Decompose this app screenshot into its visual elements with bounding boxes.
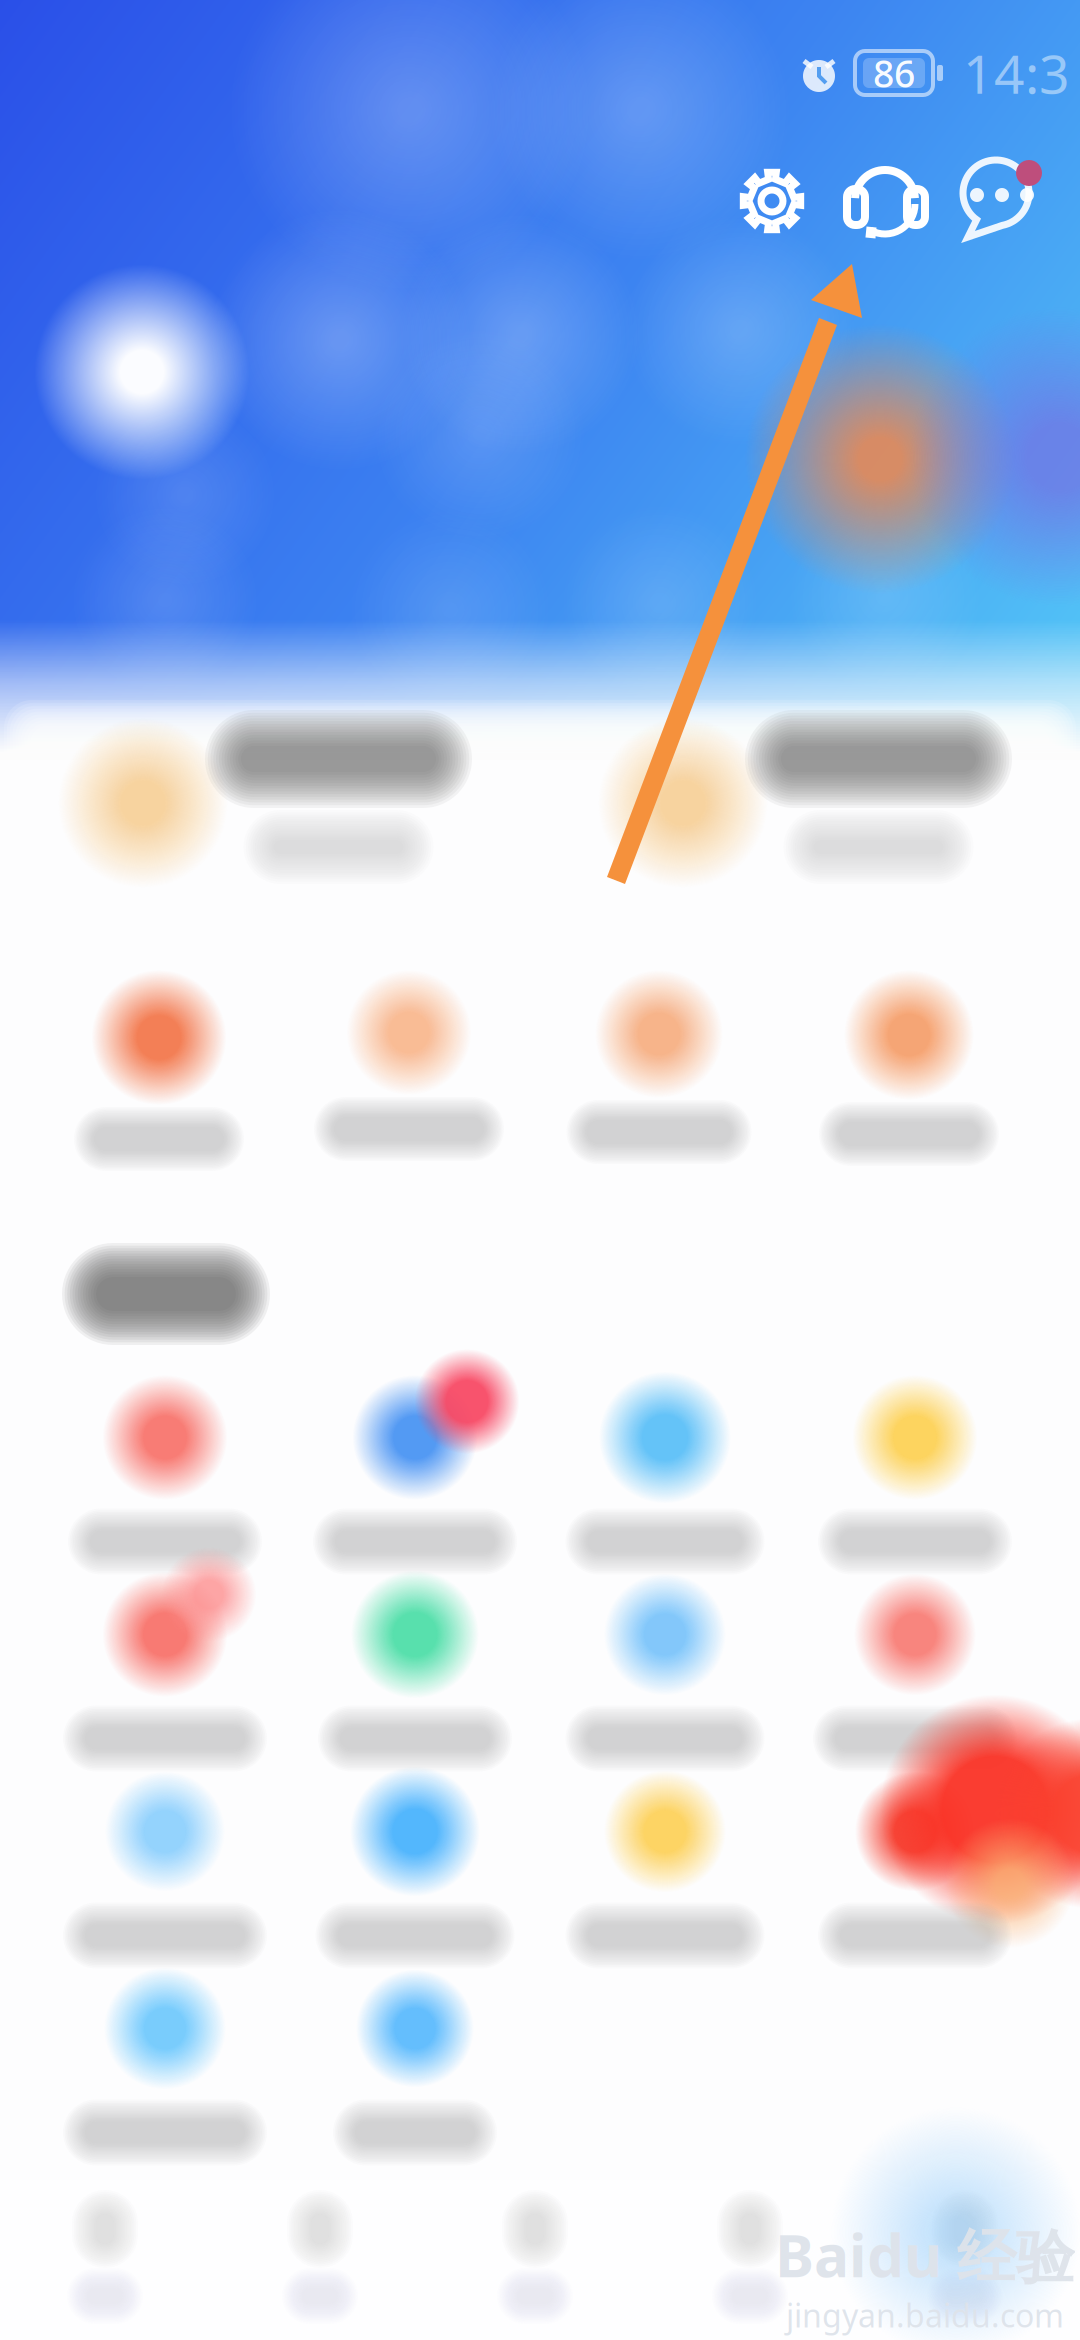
button[interactable]	[290, 1772, 540, 1969]
button[interactable]	[790, 1575, 1040, 1772]
button[interactable]	[685, 2180, 815, 2340]
staticText: 86	[873, 48, 915, 98]
button[interactable]	[790, 1772, 1040, 1969]
button[interactable]	[540, 710, 1080, 896]
button[interactable]	[40, 2180, 170, 2340]
button[interactable]	[540, 1772, 790, 1969]
button[interactable]	[900, 2180, 1030, 2340]
button[interactable]	[0, 710, 540, 896]
button[interactable]: Customer service	[847, 160, 925, 242]
staticText: Baidu 经验	[775, 2216, 1075, 2294]
button[interactable]	[255, 2180, 385, 2340]
button[interactable]	[470, 2180, 600, 2340]
button[interactable]	[40, 1772, 290, 1969]
button[interactable]	[534, 950, 784, 1204]
button[interactable]	[40, 1575, 290, 1772]
button[interactable]	[290, 1969, 540, 2166]
button[interactable]	[40, 1969, 290, 2166]
button[interactable]	[540, 1378, 790, 1575]
button[interactable]	[784, 950, 1034, 1204]
button[interactable]	[540, 1575, 790, 1772]
button[interactable]	[34, 950, 284, 1204]
button[interactable]: Settings	[740, 169, 804, 233]
staticText: jingyan.baidu.com	[786, 2294, 1064, 2336]
button[interactable]	[284, 950, 534, 1204]
button[interactable]	[790, 1378, 1040, 1575]
button[interactable]	[290, 1575, 540, 1772]
button[interactable]: Messages	[956, 157, 1044, 245]
staticText: 14:3	[963, 38, 1070, 108]
button[interactable]	[40, 1378, 290, 1575]
button[interactable]	[290, 1378, 540, 1575]
